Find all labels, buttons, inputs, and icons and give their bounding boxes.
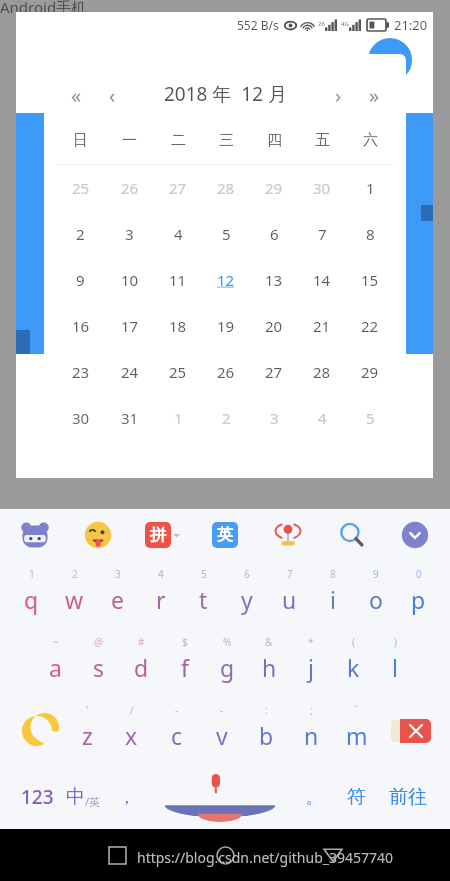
- button[interactable]: 19: [202, 303, 250, 349]
- button[interactable]: 27: [250, 349, 298, 395]
- button[interactable]: Baidu assistant: [16, 516, 54, 554]
- button[interactable]: Recents: [100, 838, 134, 872]
- button[interactable]: -: [154, 697, 199, 765]
- button[interactable]: 12: [202, 257, 250, 303]
- button[interactable]: Backspace: [379, 697, 442, 765]
- button[interactable]: 1: [10, 561, 53, 629]
- button[interactable]: 9: [354, 561, 397, 629]
- button[interactable]: 7: [268, 561, 311, 629]
- button[interactable]: 13: [250, 257, 298, 303]
- button[interactable]: -: [199, 697, 244, 765]
- button[interactable]: 25: [56, 165, 105, 211]
- button[interactable]: Voice effects: [269, 516, 307, 554]
- button[interactable]: *: [290, 629, 332, 697]
- button[interactable]: 4: [298, 395, 346, 441]
- button[interactable]: $: [163, 629, 206, 697]
- button[interactable]: ，: [107, 765, 145, 829]
- staticText: 7: [318, 224, 327, 244]
- button[interactable]: ;: [289, 697, 334, 765]
- button[interactable]: 10: [105, 257, 154, 303]
- button[interactable]: (: [332, 629, 374, 697]
- button[interactable]: Back: [316, 838, 350, 872]
- button[interactable]: 29: [346, 349, 394, 395]
- button[interactable]: /: [109, 697, 154, 765]
- button[interactable]: Pinyin input: [143, 516, 181, 554]
- button[interactable]: 0: [397, 561, 440, 629]
- button[interactable]: Space / voice input: [145, 765, 295, 829]
- button[interactable]: 14: [298, 257, 346, 303]
- button[interactable]: 前往: [380, 765, 436, 829]
- button[interactable]: 2: [53, 561, 96, 629]
- button[interactable]: 30: [298, 165, 346, 211]
- button[interactable]: 5: [202, 211, 250, 257]
- button[interactable]: 27: [154, 165, 202, 211]
- button[interactable]: Hide keyboard: [396, 516, 434, 554]
- button[interactable]: 8: [346, 211, 394, 257]
- button[interactable]: %: [206, 629, 248, 697]
- button[interactable]: 22: [346, 303, 394, 349]
- button[interactable]: &: [248, 629, 290, 697]
- button[interactable]: 7: [298, 211, 346, 257]
- button[interactable]: 符: [333, 765, 380, 829]
- button[interactable]: Previous month: [100, 82, 124, 106]
- button[interactable]: 25: [154, 349, 202, 395]
- button[interactable]: Home: [208, 838, 242, 872]
- button[interactable]: 28: [202, 165, 250, 211]
- button[interactable]: ': [65, 697, 109, 765]
- button[interactable]: 4: [139, 561, 182, 629]
- button[interactable]: 5: [182, 561, 225, 629]
- button[interactable]: Emoji: [79, 516, 117, 554]
- button[interactable]: #: [120, 629, 163, 697]
- button[interactable]: 3: [96, 561, 139, 629]
- button[interactable]: Search: [333, 516, 371, 554]
- staticText: 6: [244, 567, 250, 581]
- button[interactable]: 2: [202, 395, 250, 441]
- button[interactable]: 1: [154, 395, 202, 441]
- button[interactable]: 20: [250, 303, 298, 349]
- button[interactable]: 16: [56, 303, 105, 349]
- button[interactable]: 5: [346, 395, 394, 441]
- staticText: b: [259, 720, 274, 751]
- button[interactable]: 28: [298, 349, 346, 395]
- button[interactable]: 2: [56, 211, 105, 257]
- button[interactable]: English input: [206, 516, 244, 554]
- button[interactable]: 26: [105, 165, 154, 211]
- button[interactable]: ): [374, 629, 416, 697]
- button[interactable]: 15: [346, 257, 394, 303]
- button[interactable]: 1: [346, 165, 394, 211]
- button[interactable]: 3: [105, 211, 154, 257]
- button[interactable]: 31: [105, 395, 154, 441]
- button[interactable]: 4: [154, 211, 202, 257]
- button[interactable]: 30: [56, 395, 105, 441]
- button[interactable]: 21: [298, 303, 346, 349]
- button[interactable]: 123: [14, 765, 60, 829]
- button[interactable]: Next month: [326, 82, 350, 106]
- button[interactable]: Shift: [8, 697, 65, 765]
- button[interactable]: 29: [250, 165, 298, 211]
- button[interactable]: @: [77, 629, 120, 697]
- staticText: s: [93, 652, 105, 683]
- button[interactable]: `: [334, 697, 379, 765]
- button[interactable]: 9: [56, 257, 105, 303]
- button[interactable]: 24: [105, 349, 154, 395]
- button[interactable]: 6: [225, 561, 268, 629]
- button[interactable]: 中: [60, 765, 107, 829]
- staticText: z: [82, 720, 93, 751]
- button[interactable]: Next year: [362, 82, 386, 106]
- button[interactable]: 18: [154, 303, 202, 349]
- staticText: »: [369, 82, 380, 106]
- staticText: 1: [29, 567, 35, 581]
- button[interactable]: Previous year: [64, 82, 88, 106]
- button[interactable]: 11: [154, 257, 202, 303]
- button[interactable]: 。: [295, 765, 333, 829]
- button[interactable]: :: [244, 697, 289, 765]
- button[interactable]: 17: [105, 303, 154, 349]
- button[interactable]: 23: [56, 349, 105, 395]
- button[interactable]: 8: [311, 561, 354, 629]
- button[interactable]: ~: [34, 629, 77, 697]
- button[interactable]: 6: [250, 211, 298, 257]
- staticText: f: [181, 652, 189, 683]
- button[interactable]: 26: [202, 349, 250, 395]
- staticText: 4G: [341, 20, 349, 28]
- button[interactable]: 3: [250, 395, 298, 441]
